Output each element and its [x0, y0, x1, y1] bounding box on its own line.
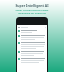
- staticText: Super Conversational Power: [15, 8, 49, 11]
- button[interactable]: [18, 42, 46, 50]
- button[interactable]: Menu: [18, 25, 46, 29]
- staticText: Optimized for everyone: [18, 11, 46, 14]
- button[interactable]: [18, 35, 46, 41]
- button[interactable]: [18, 51, 46, 57]
- staticText: Super Intelligent AI: [15, 3, 49, 8]
- button[interactable]: [18, 58, 46, 64]
- button[interactable]: [18, 30, 46, 34]
